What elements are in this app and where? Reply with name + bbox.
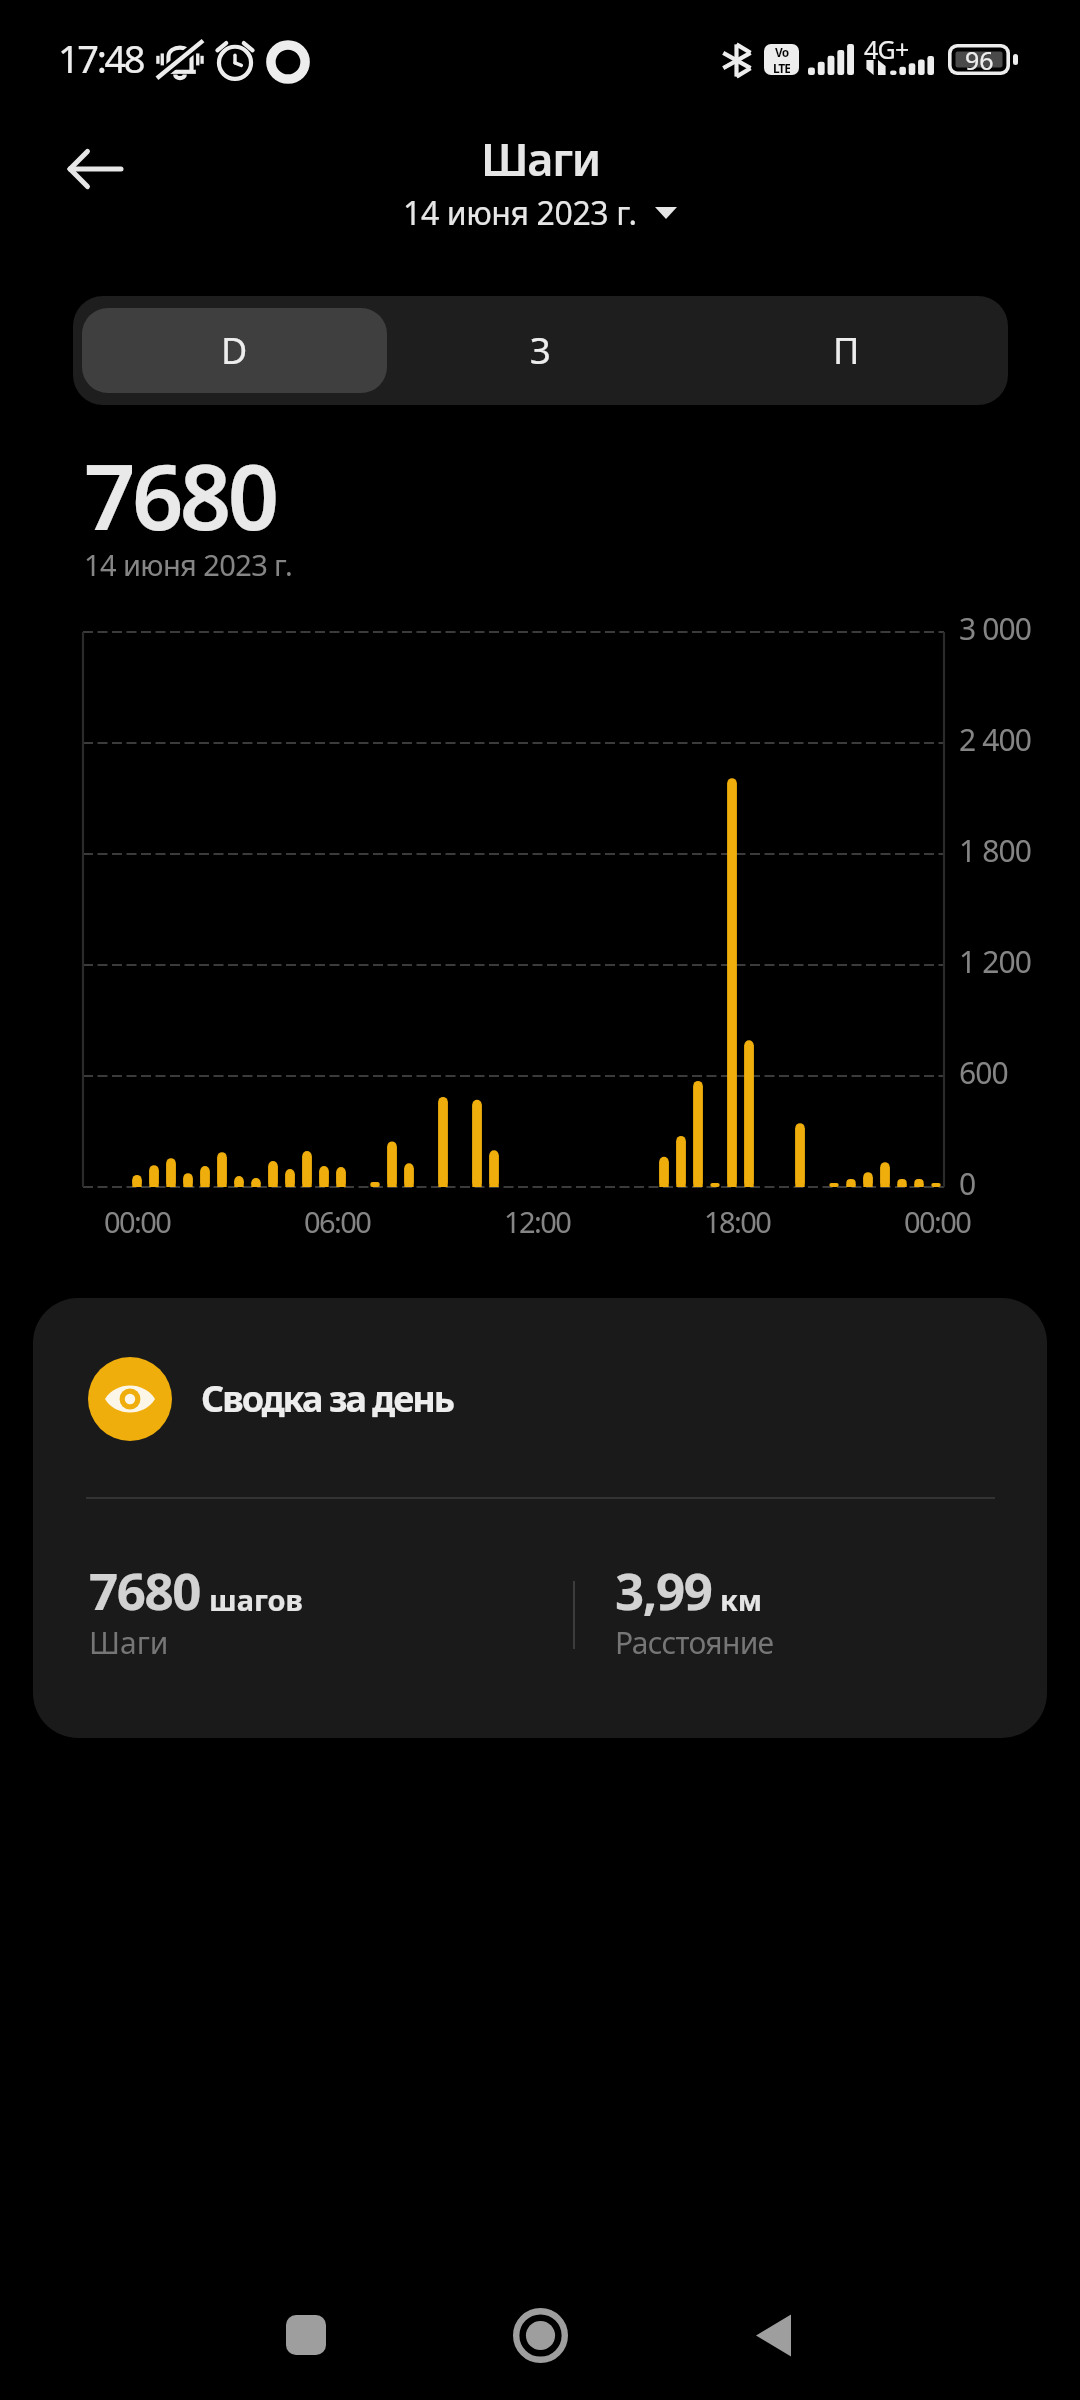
staticText: шагов: [209, 1580, 303, 1619]
staticText: 3,99: [615, 1555, 712, 1624]
staticText: 1 200: [959, 941, 1031, 982]
staticText: 00:00: [104, 1202, 171, 1241]
button[interactable]: П: [693, 308, 999, 393]
button[interactable]: З: [387, 308, 693, 393]
staticText: 7680: [84, 434, 276, 557]
button[interactable]: Recents: [260, 2289, 352, 2381]
staticText: Сводка за день: [201, 1374, 454, 1423]
button[interactable]: 14 июня 2023 г.: [403, 191, 677, 235]
staticText: 3 000: [959, 608, 1031, 649]
button[interactable]: Back: [47, 121, 143, 217]
staticText: 7680: [89, 1555, 201, 1624]
button[interactable]: Сводка за день: [33, 1298, 1047, 1738]
staticText: Шаги: [89, 1622, 169, 1663]
staticText: З: [530, 326, 551, 375]
staticText: П: [833, 326, 860, 375]
staticText: 06:00: [304, 1202, 371, 1241]
staticText: LTE: [773, 60, 790, 75]
staticText: 12:00: [504, 1202, 571, 1241]
staticText: км: [720, 1580, 763, 1619]
staticText: 14 июня 2023 г.: [403, 191, 637, 235]
staticText: 17:48: [58, 32, 144, 84]
staticText: 14 июня 2023 г.: [84, 545, 293, 584]
staticText: 00:00: [904, 1202, 971, 1241]
staticText: 96: [965, 43, 994, 74]
staticText: D: [221, 326, 248, 375]
staticText: 0: [959, 1163, 976, 1204]
staticText: 18:00: [704, 1202, 771, 1241]
button[interactable]: D: [82, 308, 387, 393]
staticText: Шаги: [481, 128, 600, 189]
button[interactable]: Back: [726, 2289, 818, 2381]
staticText: 1 800: [959, 830, 1031, 871]
staticText: 2 400: [959, 719, 1031, 760]
staticText: 600: [959, 1052, 1008, 1093]
staticText: Расстояние: [615, 1622, 774, 1663]
button[interactable]: Home: [494, 2289, 586, 2381]
staticText: Vo: [775, 44, 789, 60]
staticText: 4G+: [864, 32, 909, 66]
